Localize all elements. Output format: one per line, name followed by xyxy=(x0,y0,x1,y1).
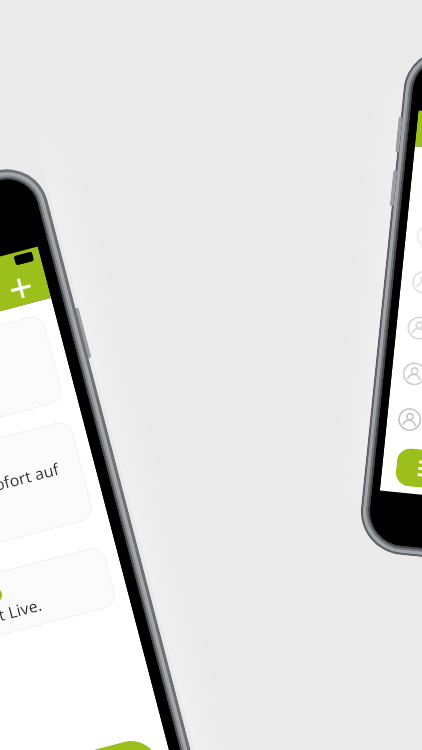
button[interactable] xyxy=(394,302,422,375)
button[interactable] xyxy=(399,257,422,329)
button[interactable] xyxy=(404,211,422,283)
button[interactable]: Add xyxy=(5,272,37,304)
staticText: Hannes ist Live. xyxy=(0,593,45,644)
staticText: Lade das Video sofort auf xyxy=(0,458,61,527)
button[interactable] xyxy=(390,348,422,421)
button[interactable] xyxy=(408,165,422,238)
button[interactable]: Hannes ist Live. xyxy=(0,545,118,674)
button[interactable] xyxy=(0,314,65,469)
button[interactable] xyxy=(0,735,166,750)
button[interactable]: Lade das Video sofort auf xyxy=(0,419,95,586)
button[interactable] xyxy=(385,394,422,466)
button[interactable]: Menu xyxy=(394,447,422,491)
